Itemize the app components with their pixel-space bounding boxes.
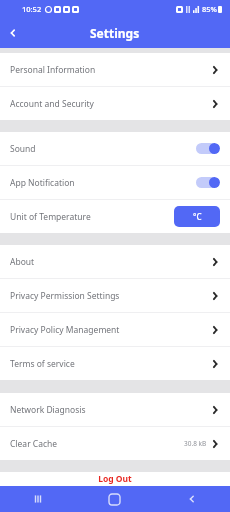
button[interactable]: Privacy Permission Settings	[0, 279, 230, 312]
staticText: Sound	[10, 143, 36, 155]
button[interactable]: °C	[174, 206, 220, 227]
button[interactable]: Network Diagnosis	[0, 393, 230, 426]
staticText: App Notification	[10, 177, 75, 189]
button[interactable]: Back	[153, 486, 230, 512]
staticText: Privacy Policy Management	[10, 324, 120, 336]
button[interactable]: Privacy Policy Management	[0, 313, 230, 346]
button[interactable]: Back	[0, 20, 26, 46]
staticText: Terms of service	[10, 358, 75, 370]
button[interactable]: Log Out	[0, 472, 230, 486]
staticText: Account and Security	[10, 98, 94, 110]
staticText: Unit of Temperature	[10, 211, 91, 223]
button[interactable]: Sound	[0, 132, 230, 165]
staticText: 85%	[202, 4, 217, 14]
staticText: Network Diagnosis	[10, 404, 86, 416]
staticText: Log Out	[98, 473, 132, 485]
button[interactable]: Personal Information	[0, 53, 230, 86]
button[interactable]: Terms of service	[0, 347, 230, 380]
staticText: 10:52	[22, 4, 42, 14]
button[interactable]: Account and Security	[0, 87, 230, 120]
button[interactable]: About	[0, 245, 230, 278]
button[interactable]: Recents	[0, 486, 76, 512]
button[interactable]: Home	[76, 486, 153, 512]
staticText: Privacy Permission Settings	[10, 290, 120, 302]
button[interactable]: App Notification	[0, 166, 230, 199]
staticText: Settings	[90, 25, 140, 41]
staticText: °C	[193, 211, 202, 222]
staticText: 30.8 kB	[184, 439, 207, 448]
staticText: About	[10, 256, 35, 268]
staticText: Clear Cache	[10, 438, 58, 450]
button[interactable]: Clear Cache	[0, 427, 230, 460]
staticText: Personal Information	[10, 64, 96, 76]
